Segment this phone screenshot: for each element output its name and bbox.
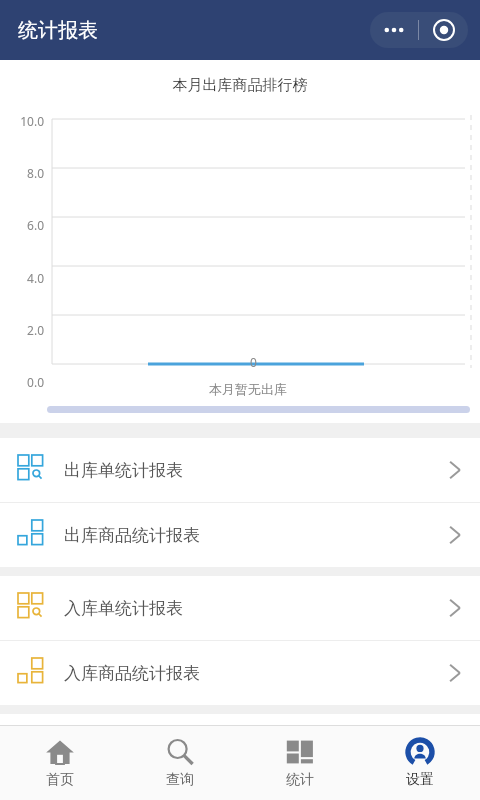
staticText: 0 [250,354,257,370]
staticText: 设置 [406,771,434,789]
staticText: 本月暂无出库 [8,381,480,397]
button[interactable]: 统计 [240,726,360,800]
button[interactable]: 入库单统计报表 [0,576,480,640]
button[interactable]: 首页 [0,726,120,800]
staticText: 统计 [286,771,314,789]
staticText: 10.0 [0,113,44,129]
button[interactable]: 入库商品统计报表 [0,641,480,705]
button[interactable]: 设置 [360,726,480,800]
staticText: 4.0 [0,270,44,286]
staticText: 统计报表 [18,18,98,43]
button[interactable]: 出库单统计报表 [0,438,480,502]
staticText: 查询 [166,771,194,789]
staticText: 入库商品统计报表 [64,663,200,684]
staticText: 本月出库商品排行榜 [0,76,480,95]
button[interactable]: More [370,12,418,48]
staticText: 2.0 [0,322,44,338]
staticText: 出库单统计报表 [64,460,183,481]
staticText: 8.0 [0,165,44,181]
staticText: 首页 [46,771,74,789]
staticText: 6.0 [0,217,44,233]
button[interactable]: 出库商品统计报表 [0,503,480,567]
button[interactable]: Target [419,12,468,48]
button[interactable]: 查询 [120,726,240,800]
staticText: 入库单统计报表 [64,598,183,619]
staticText: 出库商品统计报表 [64,525,200,546]
staticText: 0.0 [0,374,44,390]
